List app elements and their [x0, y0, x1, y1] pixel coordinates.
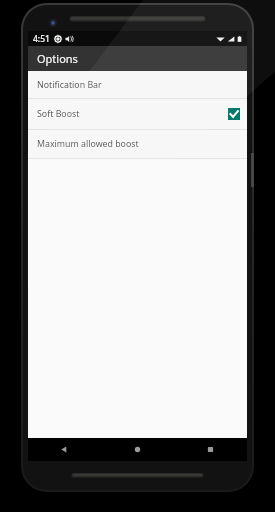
staticText: Maximum allowed boost [37, 138, 240, 150]
button[interactable]: Maximum allowed boost [28, 130, 247, 158]
staticText: Options [37, 51, 78, 66]
staticText: Soft Boost [37, 108, 228, 120]
staticText: Notification Bar [37, 79, 240, 91]
button[interactable]: Soft Boost [28, 99, 247, 129]
button[interactable]: Notification Bar [28, 71, 247, 98]
staticText: 4:51 [33, 33, 50, 45]
button[interactable]: Home [101, 438, 174, 461]
button[interactable]: Back [28, 438, 101, 461]
button[interactable]: Recent apps [174, 438, 247, 461]
button[interactable]: Soft Boost enabled [228, 108, 240, 120]
